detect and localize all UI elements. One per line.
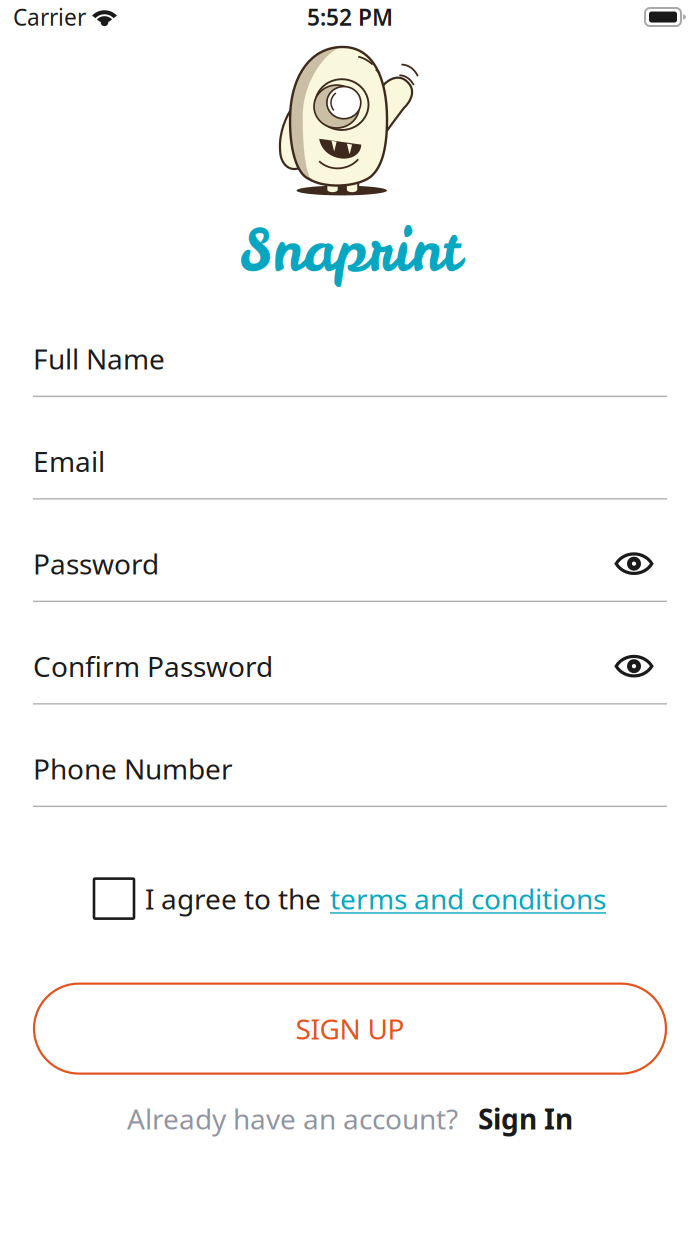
button[interactable]: Full Name — [33, 322, 667, 396]
staticText: SIGN UP — [295, 1010, 404, 1047]
staticText: Already have an account? — [127, 1100, 458, 1137]
staticText: 5:52 PM — [307, 2, 393, 32]
staticText: Snaprint — [239, 212, 460, 289]
button[interactable]: I agree to the terms and conditions — [94, 879, 134, 919]
staticText: Phone Number — [33, 750, 233, 787]
button[interactable]: SIGN UP — [34, 984, 666, 1074]
staticText: Carrier — [13, 2, 86, 32]
staticText: I agree to the — [145, 880, 321, 917]
button[interactable]: Phone Number — [33, 732, 667, 806]
button[interactable]: Sign In — [458, 1100, 573, 1137]
button[interactable]: Show Confirm Password — [615, 653, 667, 679]
staticText: terms and conditions — [330, 880, 606, 917]
button[interactable]: terms and conditions — [321, 880, 606, 917]
button[interactable]: Show Password — [615, 551, 667, 577]
staticText: Full Name — [33, 340, 165, 377]
staticText: Password — [33, 545, 159, 582]
button[interactable]: Email — [33, 424, 667, 498]
staticText: Sign In — [478, 1100, 573, 1137]
staticText: Email — [33, 443, 105, 480]
staticText: Confirm Password — [33, 648, 273, 685]
button[interactable]: Password — [33, 527, 615, 601]
button[interactable]: Confirm Password — [33, 629, 615, 703]
